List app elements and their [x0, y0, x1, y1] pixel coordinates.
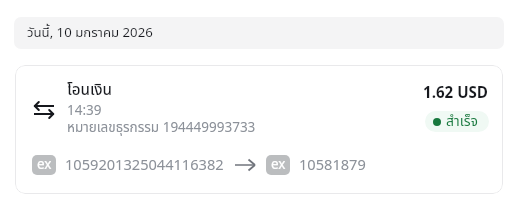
- staticText: สำเร็จ: [446, 111, 478, 132]
- staticText: 14:39: [67, 101, 102, 121]
- staticText: 10581879: [299, 155, 366, 175]
- staticText: วันนี้, 10 มกราคม 2026: [27, 23, 153, 43]
- staticText: หมายเลขธุรกรรม 194449993733: [67, 118, 256, 138]
- staticText: 1.62 USD: [423, 82, 489, 105]
- staticText: โอนเงิน: [67, 79, 112, 102]
- staticText: ex: [37, 155, 52, 175]
- other: Transfer: [33, 101, 54, 118]
- button[interactable]: วันนี้, 10 มกราคม 2026: [14, 17, 504, 49]
- staticText: ex: [271, 155, 286, 175]
- staticText: 1059201325044116382: [65, 155, 224, 175]
- button[interactable]: สำเร็จ: [425, 111, 489, 132]
- button[interactable]: Transfer: [15, 65, 503, 194]
